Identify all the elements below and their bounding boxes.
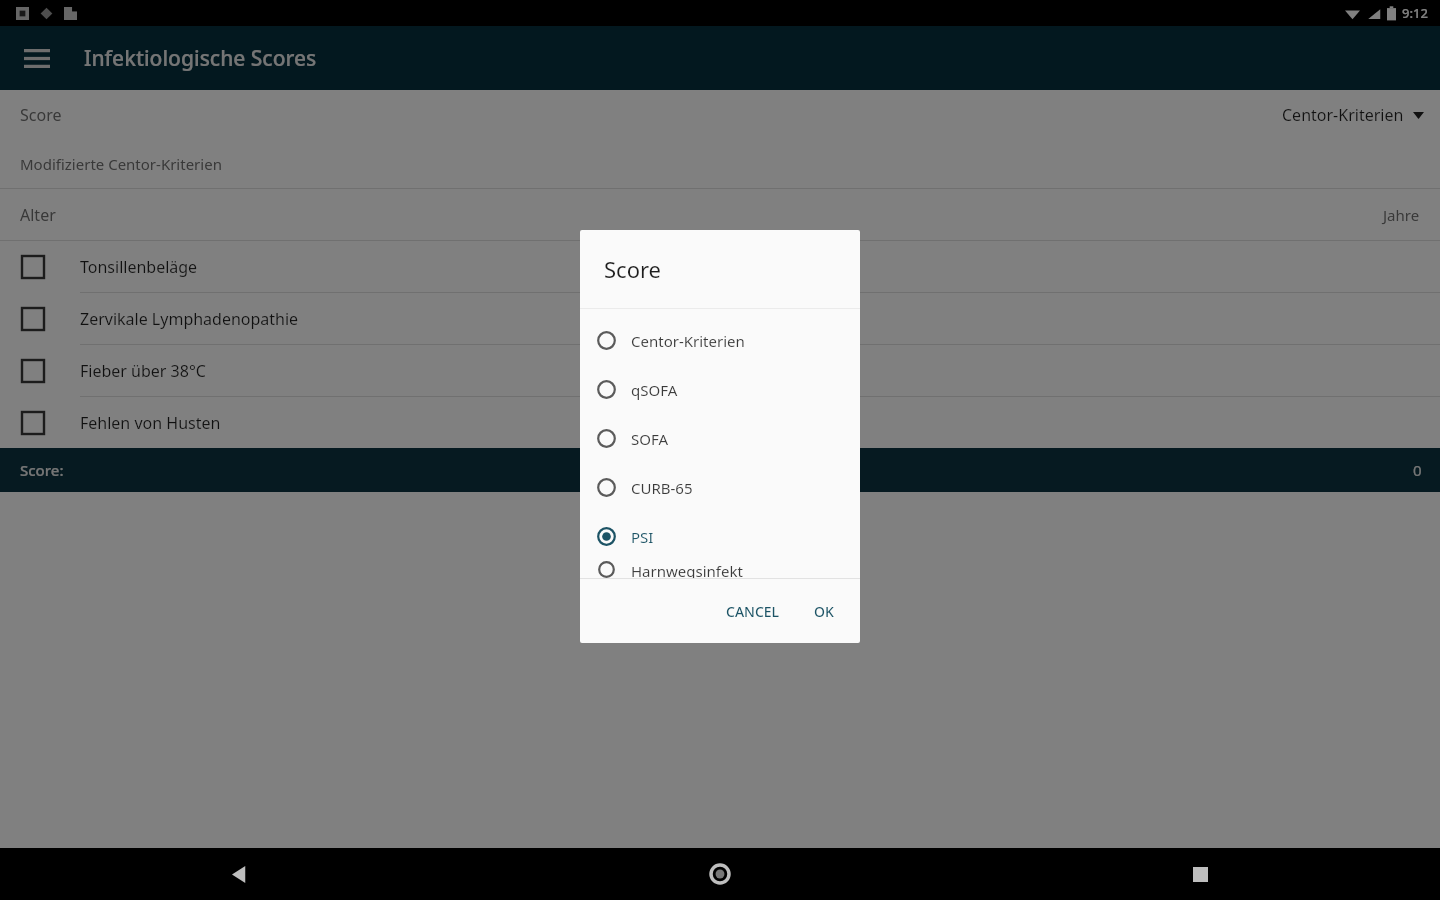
staticText: Score:	[20, 460, 64, 480]
staticText: Alter	[20, 204, 56, 226]
button[interactable]: Alter	[0, 189, 1440, 240]
staticText: Score	[604, 254, 662, 284]
staticText: OK	[814, 602, 834, 621]
button[interactable]: Centor-Kriterien	[580, 316, 860, 365]
button[interactable]: Zervikale Lymphadenopathie	[0, 293, 1440, 344]
button[interactable]: Home	[480, 848, 960, 900]
staticText: qSOFA	[631, 380, 678, 400]
staticText: PSI	[631, 527, 654, 547]
staticText: Modifizierte Centor-Kriterien	[20, 154, 222, 174]
staticText: Harnwegsinfekt	[631, 561, 743, 578]
staticText: Zervikale Lymphadenopathie	[80, 308, 299, 330]
staticText: Score	[20, 104, 62, 126]
staticText: SOFA	[631, 429, 669, 449]
staticText: Fieber über 38°C	[80, 360, 206, 382]
button[interactable]: PSI	[580, 512, 860, 561]
button[interactable]: Harnwegsinfekt	[580, 561, 860, 578]
staticText: Jahre	[1383, 205, 1420, 225]
button[interactable]: Fehlen von Husten	[0, 397, 1440, 448]
button[interactable]: SOFA	[580, 414, 860, 463]
staticText: Tonsillenbeläge	[80, 256, 198, 278]
button[interactable]: Recent apps	[960, 848, 1440, 900]
staticText: Centor-Kriterien	[1282, 104, 1404, 126]
staticText: CANCEL	[726, 602, 780, 621]
button[interactable]: OK	[802, 593, 846, 630]
staticText: Infektiologische Scores	[84, 44, 317, 73]
staticText: Centor-Kriterien	[631, 331, 745, 351]
staticText: CURB-65	[631, 478, 693, 498]
staticText: 9:12	[1402, 4, 1428, 22]
button[interactable]: CANCEL	[714, 593, 792, 630]
button[interactable]: Tonsillenbeläge	[0, 241, 1440, 292]
staticText: 0	[1413, 460, 1422, 480]
button[interactable]: Back	[0, 848, 480, 900]
button[interactable]: qSOFA	[580, 365, 860, 414]
button[interactable]: Fieber über 38°C	[0, 345, 1440, 396]
button[interactable]: Open navigation menu	[13, 34, 61, 82]
button[interactable]: Score	[0, 90, 1440, 140]
staticText: Fehlen von Husten	[80, 412, 221, 434]
button[interactable]: CURB-65	[580, 463, 860, 512]
